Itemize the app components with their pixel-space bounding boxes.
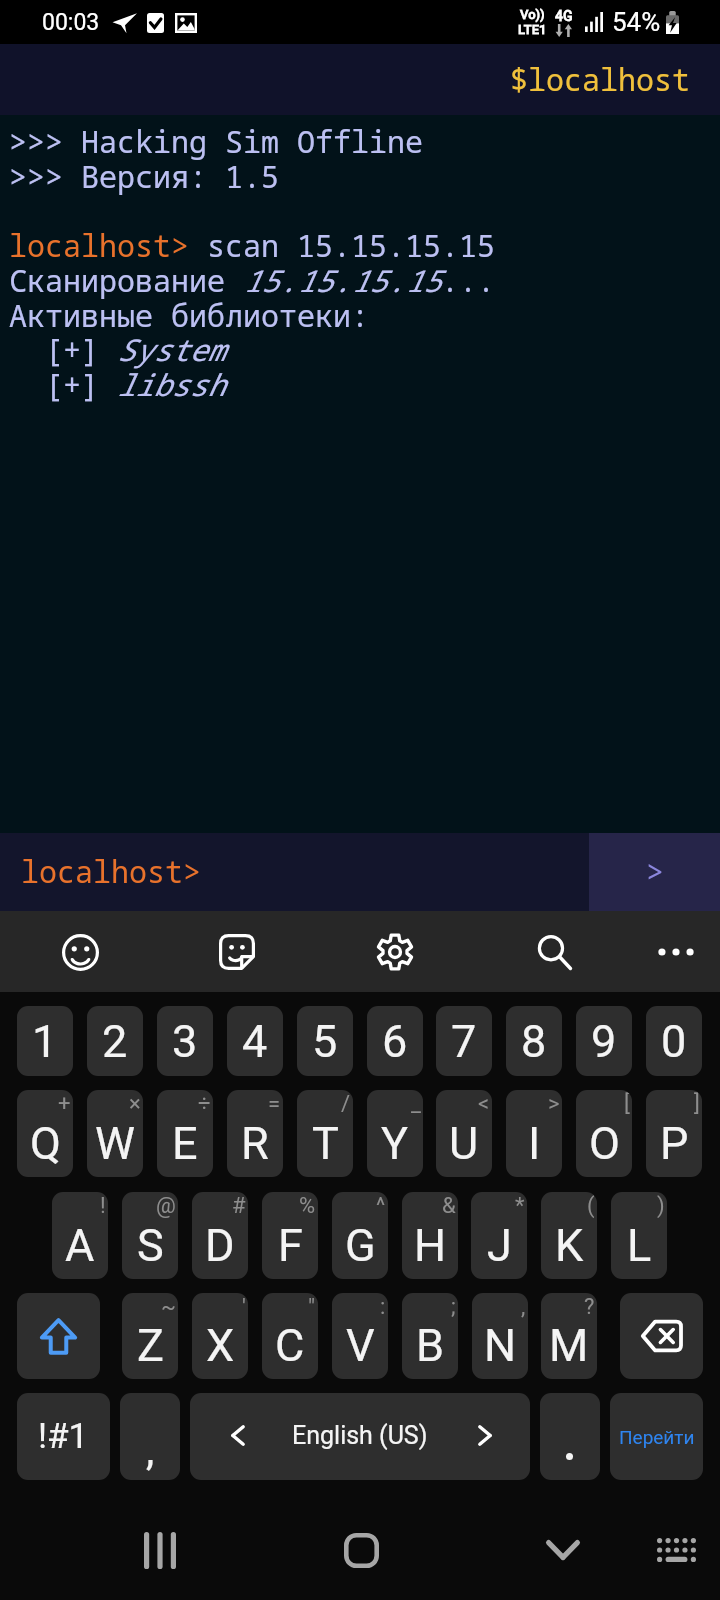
staticText: 4G	[555, 8, 573, 24]
staticText: !#1	[38, 1416, 89, 1457]
button[interactable]: Period	[540, 1393, 600, 1480]
staticText: @	[156, 1193, 176, 1219]
button[interactable]: 4	[227, 1006, 283, 1076]
staticText: Активные библиотеки:	[9, 295, 369, 336]
button[interactable]: 1	[17, 1006, 73, 1076]
staticText: &	[442, 1193, 456, 1219]
staticText: E	[172, 1117, 198, 1170]
staticText: M	[549, 1319, 589, 1372]
button[interactable]: Search	[523, 921, 585, 983]
button[interactable]: %	[262, 1192, 318, 1279]
button[interactable]: Change keyboard	[646, 1522, 706, 1578]
staticText: ÷	[198, 1091, 211, 1117]
button[interactable]: Перейти	[610, 1393, 703, 1480]
staticText: [	[624, 1091, 630, 1117]
staticText: ×	[129, 1091, 141, 1117]
staticText: >	[646, 851, 664, 892]
staticText: P	[660, 1117, 689, 1170]
button[interactable]: 7	[436, 1006, 492, 1076]
button[interactable]: Recent apps	[130, 1522, 190, 1578]
button[interactable]: More options	[645, 921, 707, 983]
button[interactable]: Home	[331, 1522, 391, 1578]
button[interactable]: Shift	[17, 1293, 100, 1379]
staticText: L	[627, 1219, 652, 1272]
button[interactable]: 8	[506, 1006, 562, 1076]
button[interactable]: ?	[541, 1293, 597, 1379]
button[interactable]: @	[122, 1192, 178, 1279]
staticText: +	[58, 1091, 71, 1117]
button[interactable]: Comma	[120, 1393, 180, 1480]
staticText: Q	[30, 1117, 61, 1170]
staticText: ^	[376, 1193, 386, 1219]
button[interactable]: 5	[297, 1006, 353, 1076]
staticText: ,	[146, 1426, 155, 1475]
staticText: $localhost	[510, 59, 690, 100]
button[interactable]: >	[506, 1090, 562, 1177]
staticText: T	[312, 1117, 339, 1170]
button[interactable]: localhost>	[0, 833, 589, 911]
button[interactable]: ]	[646, 1090, 702, 1177]
staticText: :	[380, 1294, 386, 1320]
button[interactable]: !#1	[17, 1393, 110, 1480]
button[interactable]: Keyboard settings	[364, 921, 426, 983]
staticText: 2	[102, 1015, 128, 1068]
staticText: Сканирование 15.15.15.15...	[9, 260, 495, 301]
button[interactable]: Space, English (US)	[190, 1393, 530, 1480]
button[interactable]: ~	[122, 1293, 178, 1379]
staticText: A	[65, 1219, 95, 1272]
button[interactable]: "	[262, 1293, 318, 1379]
button[interactable]: !	[52, 1192, 108, 1279]
staticText: >	[548, 1091, 560, 1117]
staticText: %	[299, 1193, 316, 1219]
staticText: J	[487, 1219, 512, 1272]
staticText: B	[416, 1319, 445, 1372]
staticText: W	[95, 1117, 135, 1170]
button[interactable]: 0	[646, 1006, 702, 1076]
staticText: Y	[381, 1117, 409, 1170]
staticText: U	[449, 1117, 479, 1170]
button[interactable]: &	[402, 1192, 458, 1279]
button[interactable]: Send command	[589, 833, 720, 911]
staticText: '	[242, 1294, 246, 1320]
button[interactable]: <	[436, 1090, 492, 1177]
staticText: ?	[584, 1294, 595, 1320]
staticText: X	[206, 1319, 235, 1372]
button[interactable]: ,	[472, 1293, 528, 1379]
button[interactable]: 3	[157, 1006, 213, 1076]
button[interactable]: (	[541, 1192, 597, 1279]
button[interactable]: :	[332, 1293, 388, 1379]
staticText: [+] System	[9, 329, 225, 370]
button[interactable]: 6	[367, 1006, 423, 1076]
button[interactable]: '	[192, 1293, 248, 1379]
button[interactable]: _	[367, 1090, 423, 1177]
staticText: I	[528, 1117, 541, 1170]
staticText: ;	[451, 1294, 456, 1320]
staticText: 1	[32, 1015, 58, 1068]
button[interactable]: 2	[87, 1006, 143, 1076]
button[interactable]: )	[611, 1192, 667, 1279]
button[interactable]: Hide keyboard	[533, 1522, 593, 1578]
button[interactable]: Emoji	[49, 921, 111, 983]
button[interactable]: Backspace	[620, 1293, 703, 1379]
button[interactable]: #	[192, 1192, 248, 1279]
staticText: R	[241, 1117, 269, 1170]
staticText: O	[589, 1117, 620, 1170]
button[interactable]: ×	[87, 1090, 143, 1177]
button[interactable]: 9	[576, 1006, 632, 1076]
button[interactable]: *	[471, 1192, 527, 1279]
staticText: >>> Hacking Sim Offline	[9, 121, 423, 162]
button[interactable]: Stickers	[206, 921, 268, 983]
staticText: "	[308, 1294, 316, 1320]
staticText: Перейти	[619, 1426, 695, 1448]
button[interactable]: /	[297, 1090, 353, 1177]
staticText: =	[268, 1091, 281, 1117]
button[interactable]: [	[576, 1090, 632, 1177]
button[interactable]: ^	[332, 1192, 388, 1279]
button[interactable]: +	[17, 1090, 73, 1177]
button[interactable]: =	[227, 1090, 283, 1177]
button[interactable]: ÷	[157, 1090, 213, 1177]
button[interactable]: ;	[402, 1293, 458, 1379]
staticText: ,	[521, 1294, 526, 1320]
staticText: G	[345, 1219, 376, 1272]
staticText: D	[205, 1219, 235, 1272]
